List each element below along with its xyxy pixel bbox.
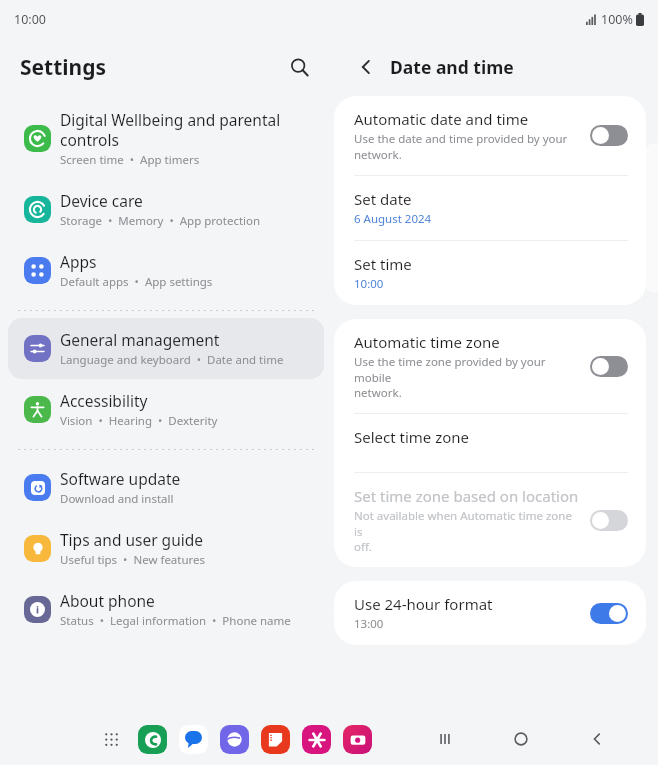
staticText: Storage • Memory • App protection bbox=[60, 213, 261, 229]
staticText: Digital Wellbeing and parental controls bbox=[60, 109, 281, 150]
button[interactable]: Automatic time zone bbox=[334, 319, 646, 413]
button[interactable]: General management bbox=[8, 318, 324, 379]
staticText: Set date bbox=[354, 189, 412, 209]
staticText: 10:00 bbox=[354, 276, 384, 292]
staticText: Set time zone based on location bbox=[354, 486, 579, 506]
staticText: Use the time zone provided by your mobil… bbox=[354, 354, 580, 400]
staticText: Apps bbox=[60, 251, 97, 272]
staticText: Automatic date and time bbox=[354, 109, 529, 129]
button[interactable]: Search bbox=[282, 50, 316, 84]
button[interactable]: Digital Wellbeing and parental controls bbox=[8, 98, 324, 179]
staticText: Default apps • App settings bbox=[60, 274, 213, 290]
staticText: Use 24-hour format bbox=[354, 594, 493, 614]
staticText: 10:00 bbox=[14, 11, 46, 28]
button[interactable]: Back bbox=[350, 51, 382, 83]
button[interactable]: Off bbox=[590, 510, 628, 531]
button[interactable] bbox=[261, 725, 290, 754]
staticText: 6 August 2024 bbox=[354, 211, 432, 227]
button[interactable]: Recents bbox=[426, 720, 464, 758]
button[interactable]: Select time zone bbox=[334, 414, 646, 460]
button[interactable]: Off bbox=[590, 356, 628, 377]
staticText: 100% bbox=[601, 11, 633, 28]
button[interactable]: Apps bbox=[8, 240, 324, 301]
button[interactable]: Use 24-hour format bbox=[334, 581, 646, 645]
staticText: Device care bbox=[60, 190, 143, 211]
staticText: Software update bbox=[60, 468, 181, 489]
staticText: Status • Legal information • Phone name bbox=[60, 613, 291, 629]
button[interactable] bbox=[302, 725, 331, 754]
button[interactable] bbox=[343, 725, 372, 754]
staticText: Select time zone bbox=[354, 427, 470, 447]
button[interactable]: Home bbox=[502, 720, 540, 758]
button[interactable]: Back bbox=[578, 720, 616, 758]
button[interactable]: Tips and user guide bbox=[8, 518, 324, 579]
staticText: Download and install bbox=[60, 491, 174, 507]
staticText: Screen time • App timers bbox=[60, 152, 200, 168]
staticText: Automatic time zone bbox=[354, 332, 500, 352]
button[interactable] bbox=[179, 725, 208, 754]
staticText: Vision • Hearing • Dexterity bbox=[60, 413, 218, 429]
button[interactable]: Set time bbox=[334, 241, 646, 305]
staticText: 13:00 bbox=[354, 616, 384, 632]
staticText: Date and time bbox=[390, 55, 514, 79]
button[interactable]: Automatic date and time bbox=[334, 96, 646, 175]
button[interactable]: Apps bbox=[96, 724, 126, 754]
staticText: Settings bbox=[20, 53, 107, 82]
staticText: Set time bbox=[354, 254, 412, 274]
button[interactable]: Set date bbox=[334, 176, 646, 240]
button[interactable] bbox=[220, 725, 249, 754]
staticText: Not available when Automatic time zone i… bbox=[354, 508, 580, 554]
staticText: Use the date and time provided by your n… bbox=[354, 131, 568, 162]
staticText: Language and keyboard • Date and time bbox=[60, 352, 284, 368]
staticText: About phone bbox=[60, 590, 155, 611]
button[interactable]: Software update bbox=[8, 457, 324, 518]
button[interactable]: Device care bbox=[8, 179, 324, 240]
button[interactable]: On bbox=[590, 603, 628, 624]
button[interactable]: About phone bbox=[8, 579, 324, 640]
staticText: Tips and user guide bbox=[60, 529, 204, 550]
staticText: General management bbox=[60, 329, 220, 350]
button[interactable]: Set time zone based on location bbox=[334, 473, 646, 567]
button[interactable]: Accessibility bbox=[8, 379, 324, 440]
staticText: Accessibility bbox=[60, 390, 148, 411]
button[interactable]: Off bbox=[590, 125, 628, 146]
button[interactable] bbox=[138, 725, 167, 754]
staticText: Useful tips • New features bbox=[60, 552, 206, 568]
